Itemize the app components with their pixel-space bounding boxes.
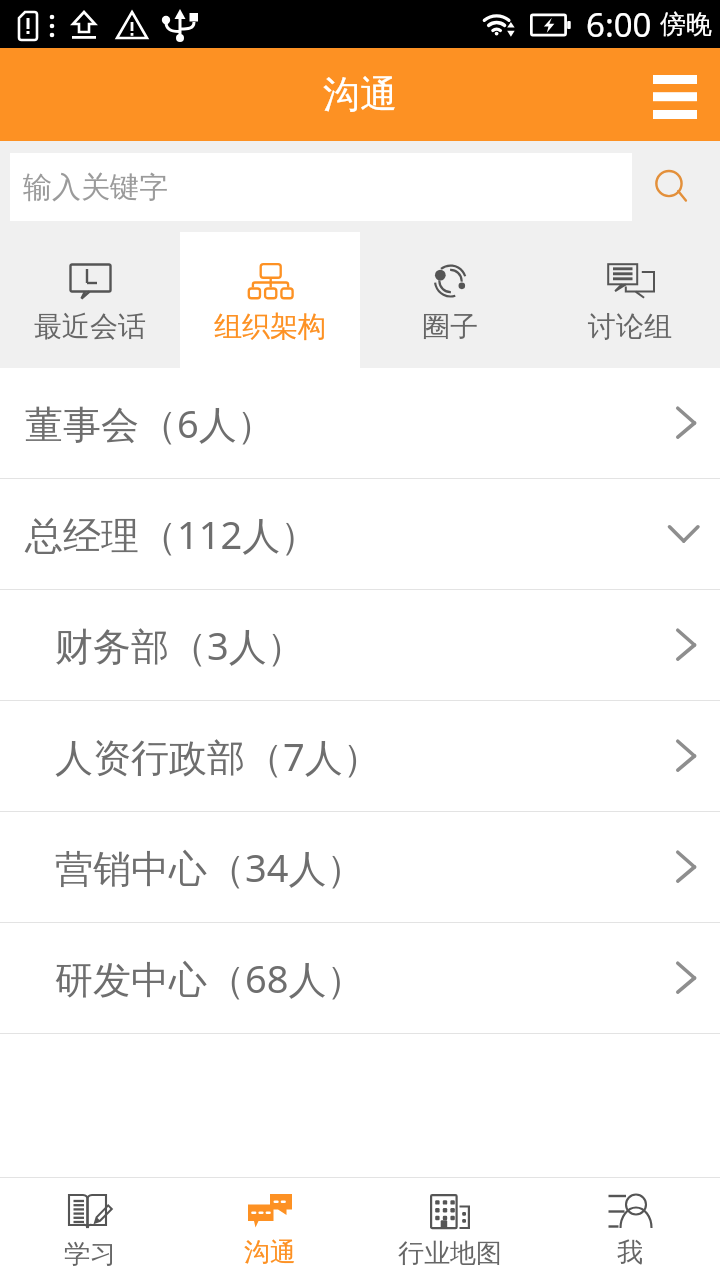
button[interactable]: Search (632, 141, 720, 232)
button[interactable]: 董事会（6人） (0, 368, 720, 478)
button[interactable]: Menu (630, 48, 720, 141)
button[interactable]: 学习 (0, 1178, 180, 1280)
button[interactable]: 输入关键字 (10, 153, 632, 221)
staticText: 沟通 (244, 1236, 296, 1269)
button[interactable]: 组织架构 (180, 232, 360, 368)
staticText: 总经理（112人） (25, 508, 319, 560)
button[interactable]: 总经理（112人） (0, 479, 720, 589)
staticText: 圈子 (422, 309, 478, 344)
staticText: 财务部（3人） (55, 619, 305, 671)
staticText: 研发中心（68人） (55, 952, 365, 1004)
button[interactable]: 我 (540, 1178, 720, 1280)
staticText: 学习 (64, 1238, 116, 1271)
staticText: 董事会（6人） (25, 397, 275, 449)
staticText: 讨论组 (588, 309, 672, 344)
button[interactable]: 行业地图 (360, 1178, 540, 1280)
staticText: 行业地图 (398, 1237, 502, 1270)
button[interactable]: 圈子 (360, 232, 540, 368)
staticText: 我 (617, 1236, 643, 1269)
button[interactable]: 沟通 (180, 1178, 360, 1280)
staticText: 人资行政部（7人） (55, 730, 381, 782)
staticText: 傍晚 (660, 8, 712, 41)
button[interactable]: 讨论组 (540, 232, 720, 368)
staticText: 6:00 (586, 2, 652, 47)
staticText: 沟通 (323, 71, 397, 118)
staticText: 组织架构 (214, 309, 326, 344)
button[interactable]: 最近会话 (0, 232, 180, 368)
button[interactable]: 营销中心（34人） (0, 812, 720, 922)
staticText: 营销中心（34人） (55, 841, 365, 893)
button[interactable]: 人资行政部（7人） (0, 701, 720, 811)
button[interactable]: 研发中心（68人） (0, 923, 720, 1033)
staticText: 输入关键字 (23, 169, 168, 206)
staticText: 最近会话 (34, 309, 146, 344)
button[interactable]: 财务部（3人） (0, 590, 720, 700)
